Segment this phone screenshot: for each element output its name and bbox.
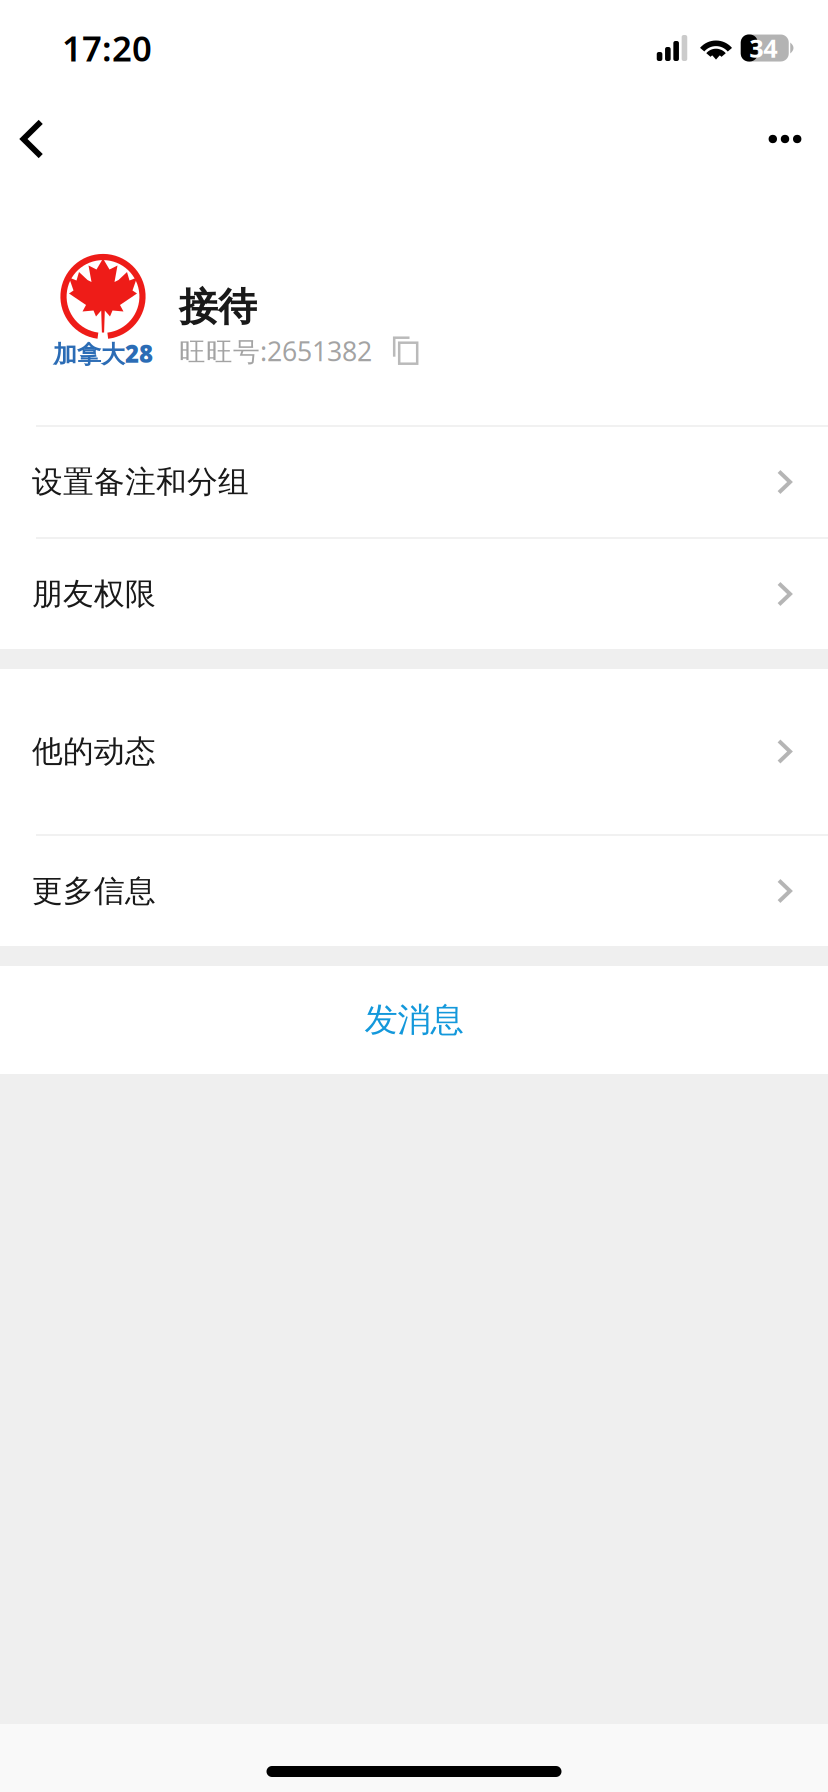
staticText: 发消息 xyxy=(364,999,463,1040)
button[interactable]: Copy WeChat ID xyxy=(393,336,419,365)
staticText: 加拿大28 xyxy=(53,338,153,369)
button[interactable]: 朋友权限 xyxy=(0,539,828,649)
staticText: 旺旺号:2651382 xyxy=(179,333,372,369)
button[interactable]: 他的动态 xyxy=(0,669,828,834)
staticText: 34 xyxy=(749,31,777,65)
staticText: 朋友权限 xyxy=(32,575,156,613)
button[interactable]: 设置备注和分组 xyxy=(0,427,828,537)
staticText: 接待 xyxy=(179,283,257,331)
button[interactable]: 发消息 xyxy=(0,966,828,1074)
button[interactable]: 更多信息 xyxy=(0,836,828,946)
staticText: 设置备注和分组 xyxy=(32,463,249,501)
staticText: 17:20 xyxy=(62,25,152,71)
staticText: 他的动态 xyxy=(32,733,156,770)
staticText: 更多信息 xyxy=(32,872,156,910)
button[interactable]: Back xyxy=(0,96,70,182)
button[interactable]: More xyxy=(745,99,825,179)
